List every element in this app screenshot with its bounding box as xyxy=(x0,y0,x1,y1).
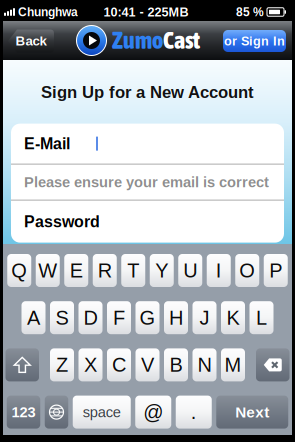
staticText: 10:41 - 225MB xyxy=(103,5,188,19)
staticText: Z xyxy=(56,354,68,376)
staticText: B xyxy=(169,354,182,376)
staticText: M xyxy=(224,354,241,376)
button[interactable]: E xyxy=(64,254,88,287)
button[interactable]: S xyxy=(50,301,74,334)
staticText: Y xyxy=(155,259,168,282)
button[interactable]: C xyxy=(107,348,131,381)
staticText: Zumo xyxy=(112,26,163,54)
button[interactable]: V xyxy=(135,348,159,381)
button[interactable]: O xyxy=(235,254,259,287)
staticText: N xyxy=(197,354,211,376)
staticText: Sign Up for a New Account xyxy=(41,83,254,102)
staticText: P xyxy=(269,259,282,282)
button[interactable]: H xyxy=(164,301,188,334)
button[interactable]: A xyxy=(21,301,45,334)
staticText: Cast xyxy=(163,26,200,54)
staticText: G xyxy=(139,306,155,329)
button[interactable]: Back xyxy=(8,29,54,52)
button[interactable]: L xyxy=(249,301,273,334)
button[interactable]: W xyxy=(36,254,60,287)
staticText: V xyxy=(141,354,154,376)
button[interactable]: Z xyxy=(50,348,74,381)
button[interactable]: Next keyboard xyxy=(45,396,68,429)
staticText: F xyxy=(113,306,125,329)
staticText: Q xyxy=(11,259,27,282)
button[interactable]: J xyxy=(192,301,216,334)
button[interactable]: N xyxy=(192,348,216,381)
button[interactable]: B xyxy=(164,348,188,381)
staticText: R xyxy=(98,259,112,282)
staticText: Password xyxy=(24,213,100,231)
button[interactable]: Q xyxy=(7,254,31,287)
button[interactable]: or Sign In xyxy=(223,30,286,52)
button[interactable]: Delete xyxy=(256,348,289,381)
staticText: D xyxy=(83,306,97,329)
staticText: I xyxy=(216,259,222,282)
button[interactable]: U xyxy=(178,254,202,287)
staticText: S xyxy=(55,306,68,329)
button[interactable]: G xyxy=(135,301,159,334)
staticText: T xyxy=(127,259,139,282)
button[interactable]: M xyxy=(221,348,245,381)
staticText: @ xyxy=(143,401,163,423)
staticText: Back xyxy=(15,34,46,48)
staticText: Chunghwa xyxy=(18,5,78,19)
button[interactable]: Password xyxy=(11,201,284,243)
staticText: E-Mail xyxy=(24,135,70,153)
button[interactable]: I xyxy=(207,254,231,287)
button[interactable]: T xyxy=(121,254,145,287)
button[interactable]: F xyxy=(107,301,131,334)
button[interactable]: . xyxy=(176,396,212,429)
button[interactable]: Shift xyxy=(5,348,39,381)
staticText: space xyxy=(83,404,121,420)
staticText: E xyxy=(70,259,83,282)
staticText: A xyxy=(27,306,40,329)
staticText: O xyxy=(239,259,255,282)
staticText: W xyxy=(38,259,57,282)
button[interactable]: E-Mail xyxy=(11,124,284,164)
button[interactable]: R xyxy=(93,254,117,287)
button[interactable]: Next xyxy=(216,396,288,429)
staticText: L xyxy=(256,306,267,329)
staticText: 85 % xyxy=(236,5,264,19)
button[interactable]: Y xyxy=(150,254,174,287)
staticText: X xyxy=(84,354,97,376)
staticText: Please ensure your email is correct xyxy=(24,174,269,190)
staticText: . xyxy=(191,401,197,423)
staticText: Next xyxy=(235,403,269,421)
button[interactable]: D xyxy=(78,301,102,334)
button[interactable]: Numbers xyxy=(7,396,40,429)
staticText: C xyxy=(112,354,126,376)
button[interactable]: P xyxy=(264,254,288,287)
staticText: K xyxy=(226,306,239,329)
button[interactable]: X xyxy=(78,348,102,381)
staticText: 123 xyxy=(11,404,35,420)
staticText: H xyxy=(169,306,183,329)
button[interactable]: K xyxy=(221,301,245,334)
staticText: U xyxy=(183,259,197,282)
staticText: or Sign In xyxy=(224,34,285,48)
button[interactable]: @ xyxy=(135,396,171,429)
staticText: J xyxy=(199,306,209,329)
button[interactable]: space xyxy=(73,396,131,429)
